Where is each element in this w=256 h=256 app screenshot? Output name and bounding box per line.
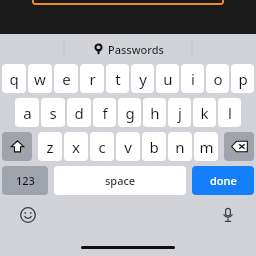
button[interactable]: i (181, 64, 204, 93)
button[interactable]: 123 (2, 166, 48, 195)
staticText: k (200, 103, 209, 123)
staticText: s (49, 103, 57, 123)
button[interactable]: Shift (2, 132, 32, 161)
button[interactable]: m (194, 132, 218, 161)
staticText: y (139, 69, 147, 89)
button[interactable]: s (41, 98, 65, 127)
button[interactable]: t (106, 64, 129, 93)
staticText: o (213, 69, 223, 89)
staticText: p (238, 69, 248, 89)
button[interactable]: z (38, 132, 62, 161)
button[interactable]: q (2, 64, 26, 93)
button[interactable]: u (156, 64, 179, 93)
staticText: w (34, 69, 46, 89)
staticText: i (191, 69, 195, 89)
staticText: r (89, 69, 96, 89)
button[interactable]: Emoji (16, 203, 40, 227)
button[interactable]: c (90, 132, 114, 161)
button[interactable]: k (193, 98, 216, 127)
staticText: d (74, 103, 84, 123)
staticText: n (175, 137, 185, 157)
staticText: z (46, 137, 54, 157)
button[interactable]: done (192, 166, 254, 195)
button[interactable]: b (142, 132, 166, 161)
staticText: j (178, 103, 182, 123)
button[interactable]: h (143, 98, 166, 127)
staticText: l (228, 103, 232, 123)
button[interactable]: l (218, 98, 241, 127)
staticText: e (62, 69, 71, 89)
button[interactable]: j (168, 98, 191, 127)
button[interactable]: Voice input (216, 203, 240, 227)
staticText: Passwords (108, 42, 164, 57)
button[interactable]: y (131, 64, 154, 93)
other: Passwords key (93, 44, 104, 55)
staticText: b (149, 137, 159, 157)
button[interactable]: e (54, 64, 78, 93)
button[interactable]: space (54, 166, 186, 195)
staticText: done (210, 173, 237, 188)
staticText: m (199, 137, 214, 157)
staticText: q (9, 69, 19, 89)
staticText: t (115, 69, 121, 89)
button[interactable]: Backspace (224, 132, 254, 161)
button[interactable]: a (15, 98, 39, 127)
button[interactable]: w (28, 64, 52, 93)
staticText: g (125, 103, 135, 123)
staticText: f (102, 103, 108, 123)
button[interactable]: v (116, 132, 140, 161)
button[interactable]: p (231, 64, 254, 93)
staticText: space (105, 173, 136, 188)
staticText: a (23, 103, 32, 123)
button[interactable]: x (64, 132, 88, 161)
staticText: x (72, 137, 80, 157)
staticText: h (150, 103, 160, 123)
button[interactable]: o (206, 64, 229, 93)
button[interactable] (32, 0, 224, 5)
button[interactable]: f (93, 98, 116, 127)
staticText: v (124, 137, 132, 157)
staticText: c (98, 137, 106, 157)
button[interactable]: Passwords key (93, 42, 164, 57)
button[interactable]: n (168, 132, 192, 161)
staticText: 123 (16, 173, 35, 188)
button[interactable]: r (80, 64, 104, 93)
button[interactable]: d (67, 98, 91, 127)
staticText: u (163, 69, 173, 89)
button[interactable]: g (118, 98, 141, 127)
